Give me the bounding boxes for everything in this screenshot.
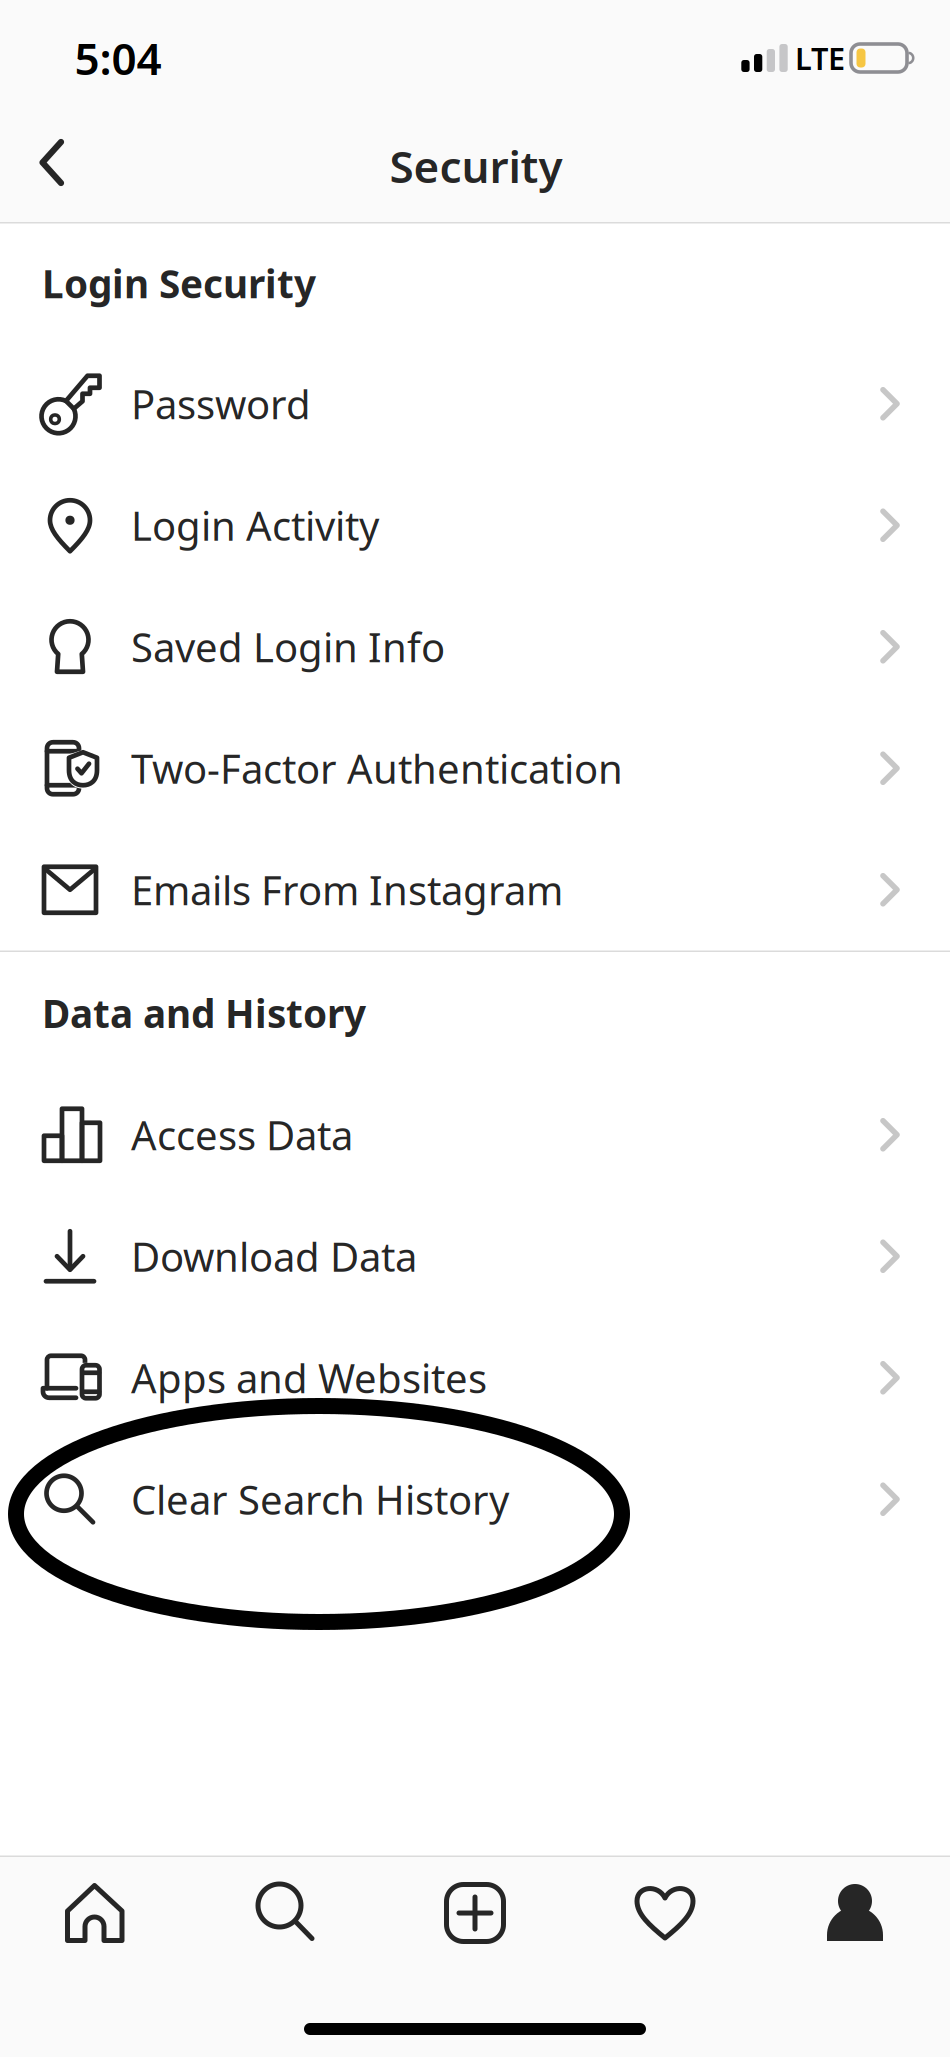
button[interactable]: Saved Login Info (0, 586, 950, 707)
button[interactable]: Two-Factor Authentication (0, 707, 950, 829)
button[interactable]: Profile (760, 1857, 950, 1969)
button[interactable]: Search (190, 1857, 380, 1969)
staticText: Emails From Instagram (131, 863, 563, 916)
button[interactable]: Download Data (0, 1195, 950, 1317)
button[interactable]: Apps and Websites (0, 1317, 950, 1438)
staticText: Download Data (131, 1230, 417, 1283)
staticText: Password (131, 377, 311, 430)
staticText: Security (389, 137, 562, 195)
button[interactable]: Clear Search History (0, 1438, 950, 1560)
staticText: Access Data (131, 1108, 353, 1161)
staticText: LTE (795, 38, 845, 78)
button[interactable]: New Post (380, 1857, 570, 1969)
staticText: 5:04 (74, 29, 161, 87)
button[interactable]: Back (15, 114, 88, 210)
staticText: Saved Login Info (131, 620, 445, 673)
button[interactable]: Password (0, 343, 950, 464)
button[interactable]: Activity (570, 1857, 760, 1969)
staticText: Apps and Websites (131, 1351, 487, 1404)
button[interactable]: Access Data (0, 1074, 950, 1195)
button[interactable]: Emails From Instagram (0, 829, 950, 950)
button[interactable]: Login Activity (0, 464, 950, 586)
staticText: Two-Factor Authentication (131, 742, 623, 795)
button[interactable]: Home (0, 1857, 190, 1969)
staticText: Login Activity (131, 499, 379, 552)
staticText: Clear Search History (131, 1473, 509, 1526)
staticText: Data and History (42, 987, 366, 1039)
staticText: Login Security (42, 258, 316, 309)
